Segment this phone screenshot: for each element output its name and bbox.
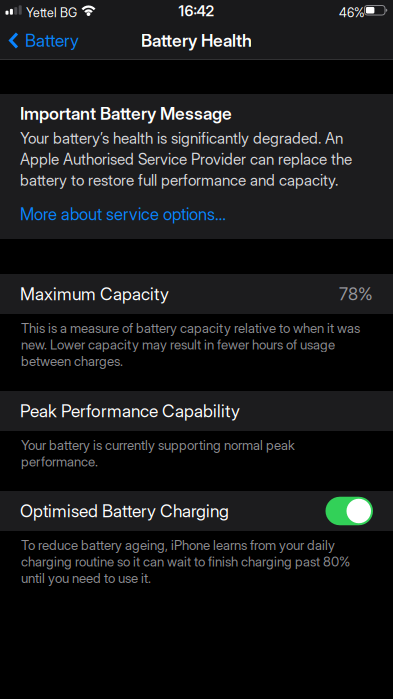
button[interactable]: Optimised Battery Charging	[325, 497, 373, 525]
staticText: Optimised Battery Charging	[20, 500, 229, 521]
staticText: Battery	[25, 30, 79, 51]
staticText: Your battery’s health is significantly d…	[20, 129, 352, 189]
staticText: Maximum Capacity	[20, 283, 169, 304]
staticText: Important Battery Message	[20, 103, 232, 124]
staticText: Peak Performance Capability	[20, 400, 240, 421]
staticText: 16:42	[178, 2, 214, 20]
staticText: 46%	[339, 5, 365, 20]
staticText: 78%	[339, 283, 373, 304]
staticText: Your battery is currently supporting nor…	[21, 437, 295, 470]
staticText: To reduce battery ageing, iPhone learns …	[21, 537, 350, 586]
button[interactable]: Back	[0, 28, 79, 51]
button[interactable]: More about service options…	[20, 204, 226, 224]
staticText: This is a measure of battery capacity re…	[21, 320, 360, 369]
staticText: More about service options…	[20, 204, 226, 224]
staticText: Yettel BG	[26, 5, 77, 20]
staticText: Battery Health	[141, 30, 252, 51]
